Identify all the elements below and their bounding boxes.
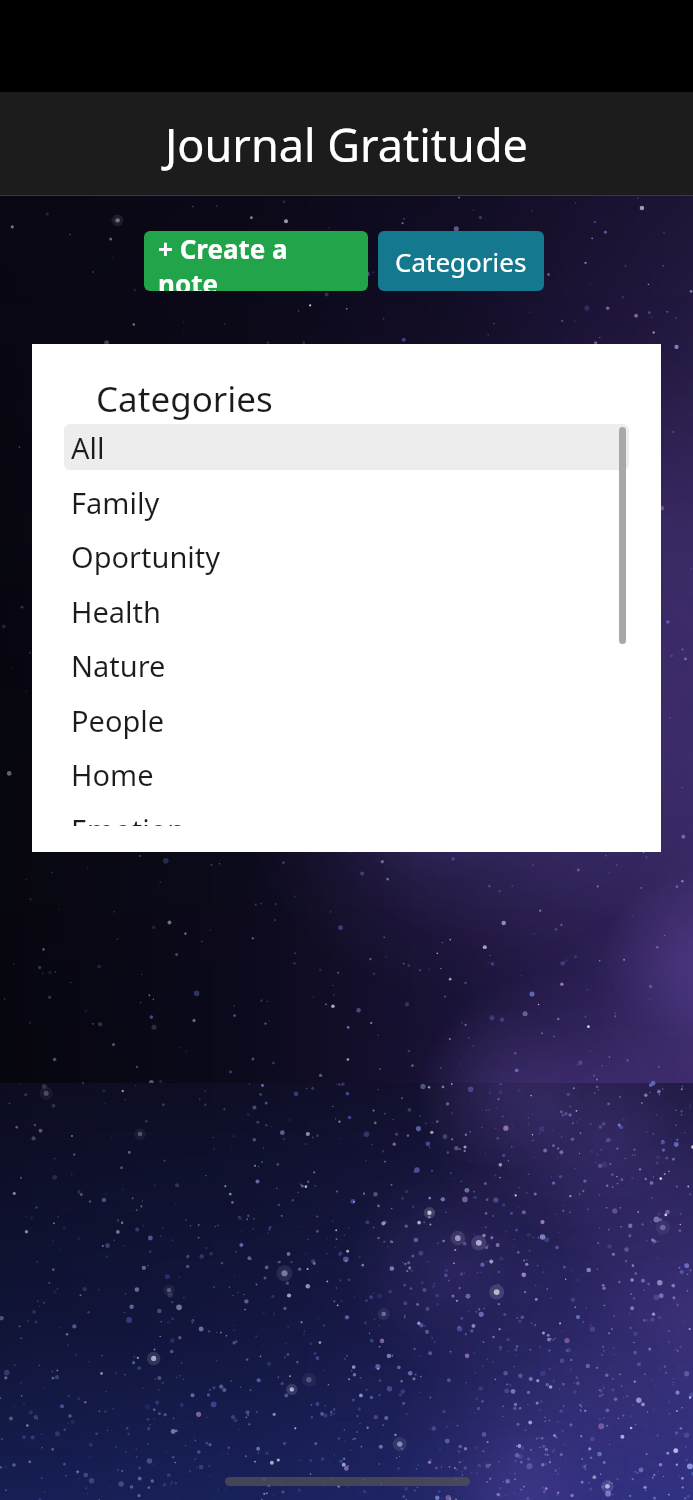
button[interactable]: Oportunity	[64, 533, 629, 579]
button[interactable]: Family	[64, 479, 629, 525]
button[interactable]: People	[64, 697, 629, 743]
button[interactable]: Health	[64, 588, 629, 634]
staticText: Emotion	[71, 810, 186, 849]
staticText: Nature	[71, 646, 166, 685]
staticText: Journal Gratitude	[165, 114, 528, 175]
button[interactable]: Nature	[64, 642, 629, 688]
staticText: Family	[71, 483, 160, 522]
button[interactable]: Categories	[378, 231, 544, 291]
button[interactable]: All	[64, 424, 629, 470]
button[interactable]	[64, 424, 629, 470]
button[interactable]: Emotion	[64, 806, 629, 852]
staticText: Categories	[96, 375, 273, 423]
staticText: All	[71, 428, 105, 467]
staticText: + Create a note	[158, 231, 354, 291]
button[interactable]: Home	[64, 751, 629, 797]
button[interactable]: + Create a note	[144, 231, 368, 291]
staticText: Home	[71, 755, 154, 794]
staticText: Health	[71, 592, 161, 631]
staticText: People	[71, 701, 165, 740]
staticText: Categories	[395, 244, 527, 279]
staticText: Oportunity	[71, 537, 221, 576]
